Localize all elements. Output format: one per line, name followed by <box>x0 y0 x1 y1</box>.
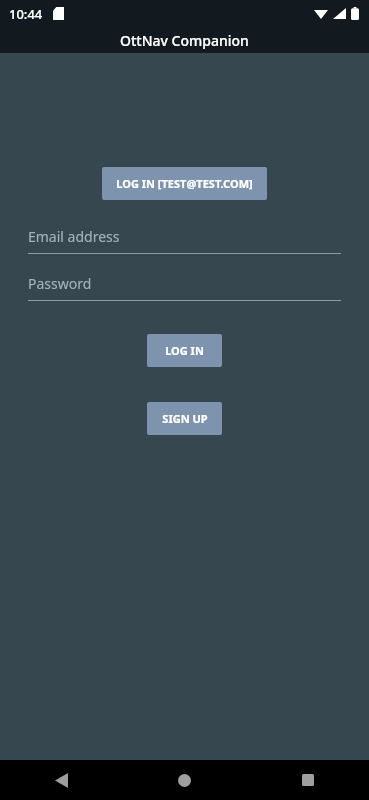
button[interactable]: Recent apps <box>246 760 369 800</box>
button[interactable]: SIGN UP <box>147 402 222 435</box>
staticText: LOG IN [TEST@TEST.COM] <box>116 176 253 191</box>
button[interactable]: LOG IN <box>147 334 222 367</box>
button[interactable]: Email address <box>28 227 341 254</box>
button[interactable]: LOG IN [TEST@TEST.COM] <box>102 167 267 200</box>
staticText: Password <box>28 274 92 293</box>
button[interactable]: Back <box>0 760 123 800</box>
staticText: LOG IN <box>165 343 204 358</box>
staticText: Email address <box>28 227 120 246</box>
staticText: OttNav Companion <box>120 31 249 50</box>
button[interactable]: Home <box>123 760 246 800</box>
staticText: 10:44 <box>9 5 43 23</box>
staticText: SIGN UP <box>162 411 208 426</box>
button[interactable]: Password <box>28 274 341 301</box>
